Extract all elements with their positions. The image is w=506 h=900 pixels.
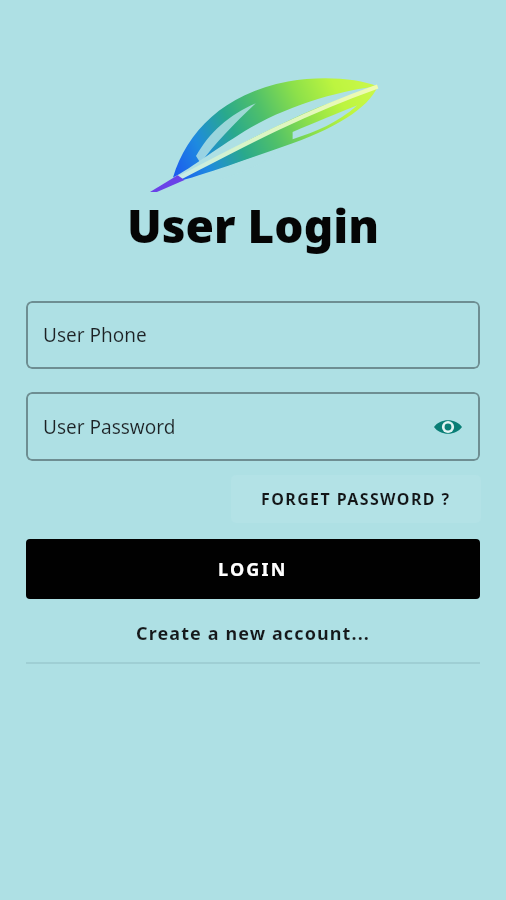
- staticText: FORGET PASSWORD ?: [261, 488, 451, 510]
- button[interactable]: User Password: [26, 392, 480, 461]
- button[interactable]: User Phone: [26, 301, 480, 369]
- button[interactable]: Create a new account...: [26, 621, 480, 646]
- button[interactable]: LOGIN: [26, 539, 480, 599]
- staticText: LOGIN: [218, 557, 288, 582]
- staticText: Create a new account...: [136, 621, 370, 646]
- button[interactable]: Show password: [430, 409, 466, 445]
- staticText: User Login: [127, 194, 379, 257]
- staticText: User Phone: [43, 322, 147, 348]
- button[interactable]: FORGET PASSWORD ?: [231, 475, 481, 523]
- staticText: User Password: [43, 414, 176, 440]
